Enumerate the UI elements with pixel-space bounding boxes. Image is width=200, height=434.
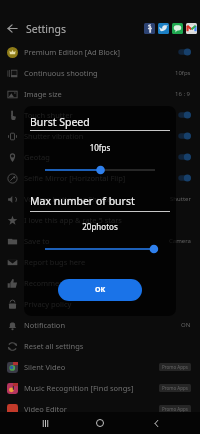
staticText: Music Recognition [Find songs] [24,383,134,393]
button[interactable]: Notification [0,314,200,335]
staticText: Geotag [24,152,50,162]
button[interactable]: Report bugs here [0,251,200,272]
button[interactable]: Recommend to friends [0,272,200,293]
staticText: Camera [169,237,191,245]
button[interactable]: Back [145,412,167,434]
staticText: Selfie Mirror [Horizontal Flip] [24,173,126,183]
staticText: Promo Apps [162,406,188,412]
staticText: Settings [26,22,66,36]
button[interactable]: Share via Gmail [186,23,197,34]
staticText: 10fps [175,69,191,77]
staticText: 16 : 9 [175,90,191,98]
button[interactable]: Privacy policy [0,293,200,314]
staticText: 10fps [24,142,176,153]
button[interactable]: Silent Video [0,356,200,377]
button[interactable]: Touch shutter [0,104,200,125]
staticText: Video Editor [24,404,67,414]
button[interactable] [45,165,155,175]
staticText: Continuous shooting [24,68,98,78]
staticText: Recommend to friends [24,278,105,288]
staticText: I love this app & rate 5 stars [24,215,122,225]
button[interactable] [45,244,155,254]
button[interactable]: Home [89,412,111,434]
button[interactable]: Share to LINE [172,23,183,34]
staticText: 20photos [24,221,176,232]
staticText: Burst Speed [30,115,90,129]
button[interactable]: Back [0,16,25,41]
staticText: Report bugs here [24,257,86,267]
button[interactable]: Shutter vibration [0,125,200,146]
button[interactable]: I love this app & rate 5 stars [0,209,200,230]
staticText: ON [181,321,191,329]
button[interactable]: Geotag [0,146,200,167]
staticText: Shutter vibration [24,131,84,141]
staticText: Silent Video [24,362,66,372]
button[interactable]: Premium Edition [Ad Block] [0,41,200,62]
button[interactable]: Music Recognition [Find songs] [0,377,200,398]
button[interactable]: Share to Twitter [158,23,169,34]
staticText: Promo Apps [162,385,188,391]
button[interactable]: Continuous shooting [0,62,200,83]
staticText: Touch shutter [24,110,73,120]
staticText: Promo Apps [162,364,188,370]
button[interactable]: Reset all settings [0,335,200,356]
staticText: Max number of burst [30,194,135,208]
button[interactable]: Selfie Mirror [Horizontal Flip] [0,167,200,188]
button[interactable]: Recent apps [34,412,56,434]
staticText: Shutter [170,195,191,203]
staticText: Notification [24,320,66,330]
staticText: OK [95,285,106,295]
button[interactable]: Video Editor [0,398,200,419]
staticText: Volume button as Shutter [24,194,115,204]
staticText: Image size [24,89,62,99]
staticText: Privacy policy [24,299,72,309]
button[interactable]: OK [58,279,142,301]
button[interactable]: Volume button as Shutter [0,188,200,209]
staticText: Reset all settings [24,341,84,351]
button[interactable]: Share to Facebook [144,23,155,34]
staticText: Save to [24,236,50,246]
staticText: Premium Edition [Ad Block] [24,47,120,57]
button[interactable]: Save to [0,230,200,251]
button[interactable]: Image size [0,83,200,104]
